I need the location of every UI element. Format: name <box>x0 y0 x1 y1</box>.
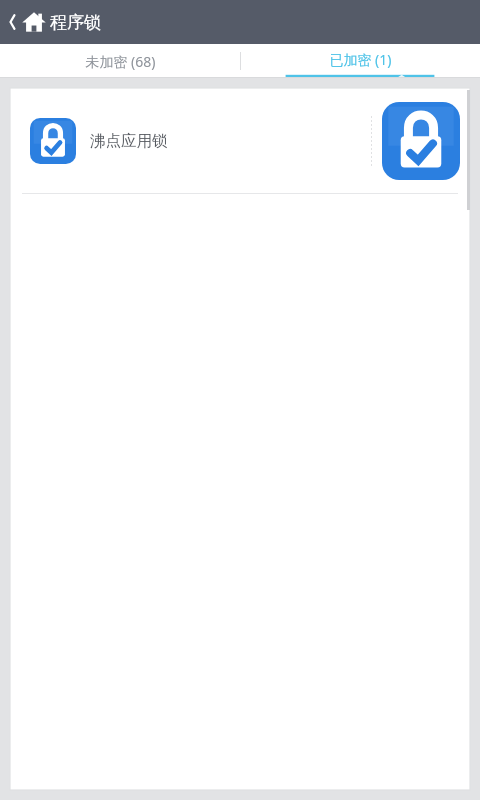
staticText: 已加密 (1) <box>329 50 392 69</box>
staticText: 沸点应用锁 <box>90 131 168 151</box>
button[interactable]: 沸点应用锁 <box>10 88 470 193</box>
button[interactable]: Back to home <box>4 7 50 37</box>
button[interactable]: 已加密 (1) <box>240 44 480 78</box>
staticText: 未加密 (68) <box>85 52 156 71</box>
button[interactable]: 未加密 (68) <box>0 44 240 78</box>
staticText: 程序锁 <box>50 12 101 33</box>
